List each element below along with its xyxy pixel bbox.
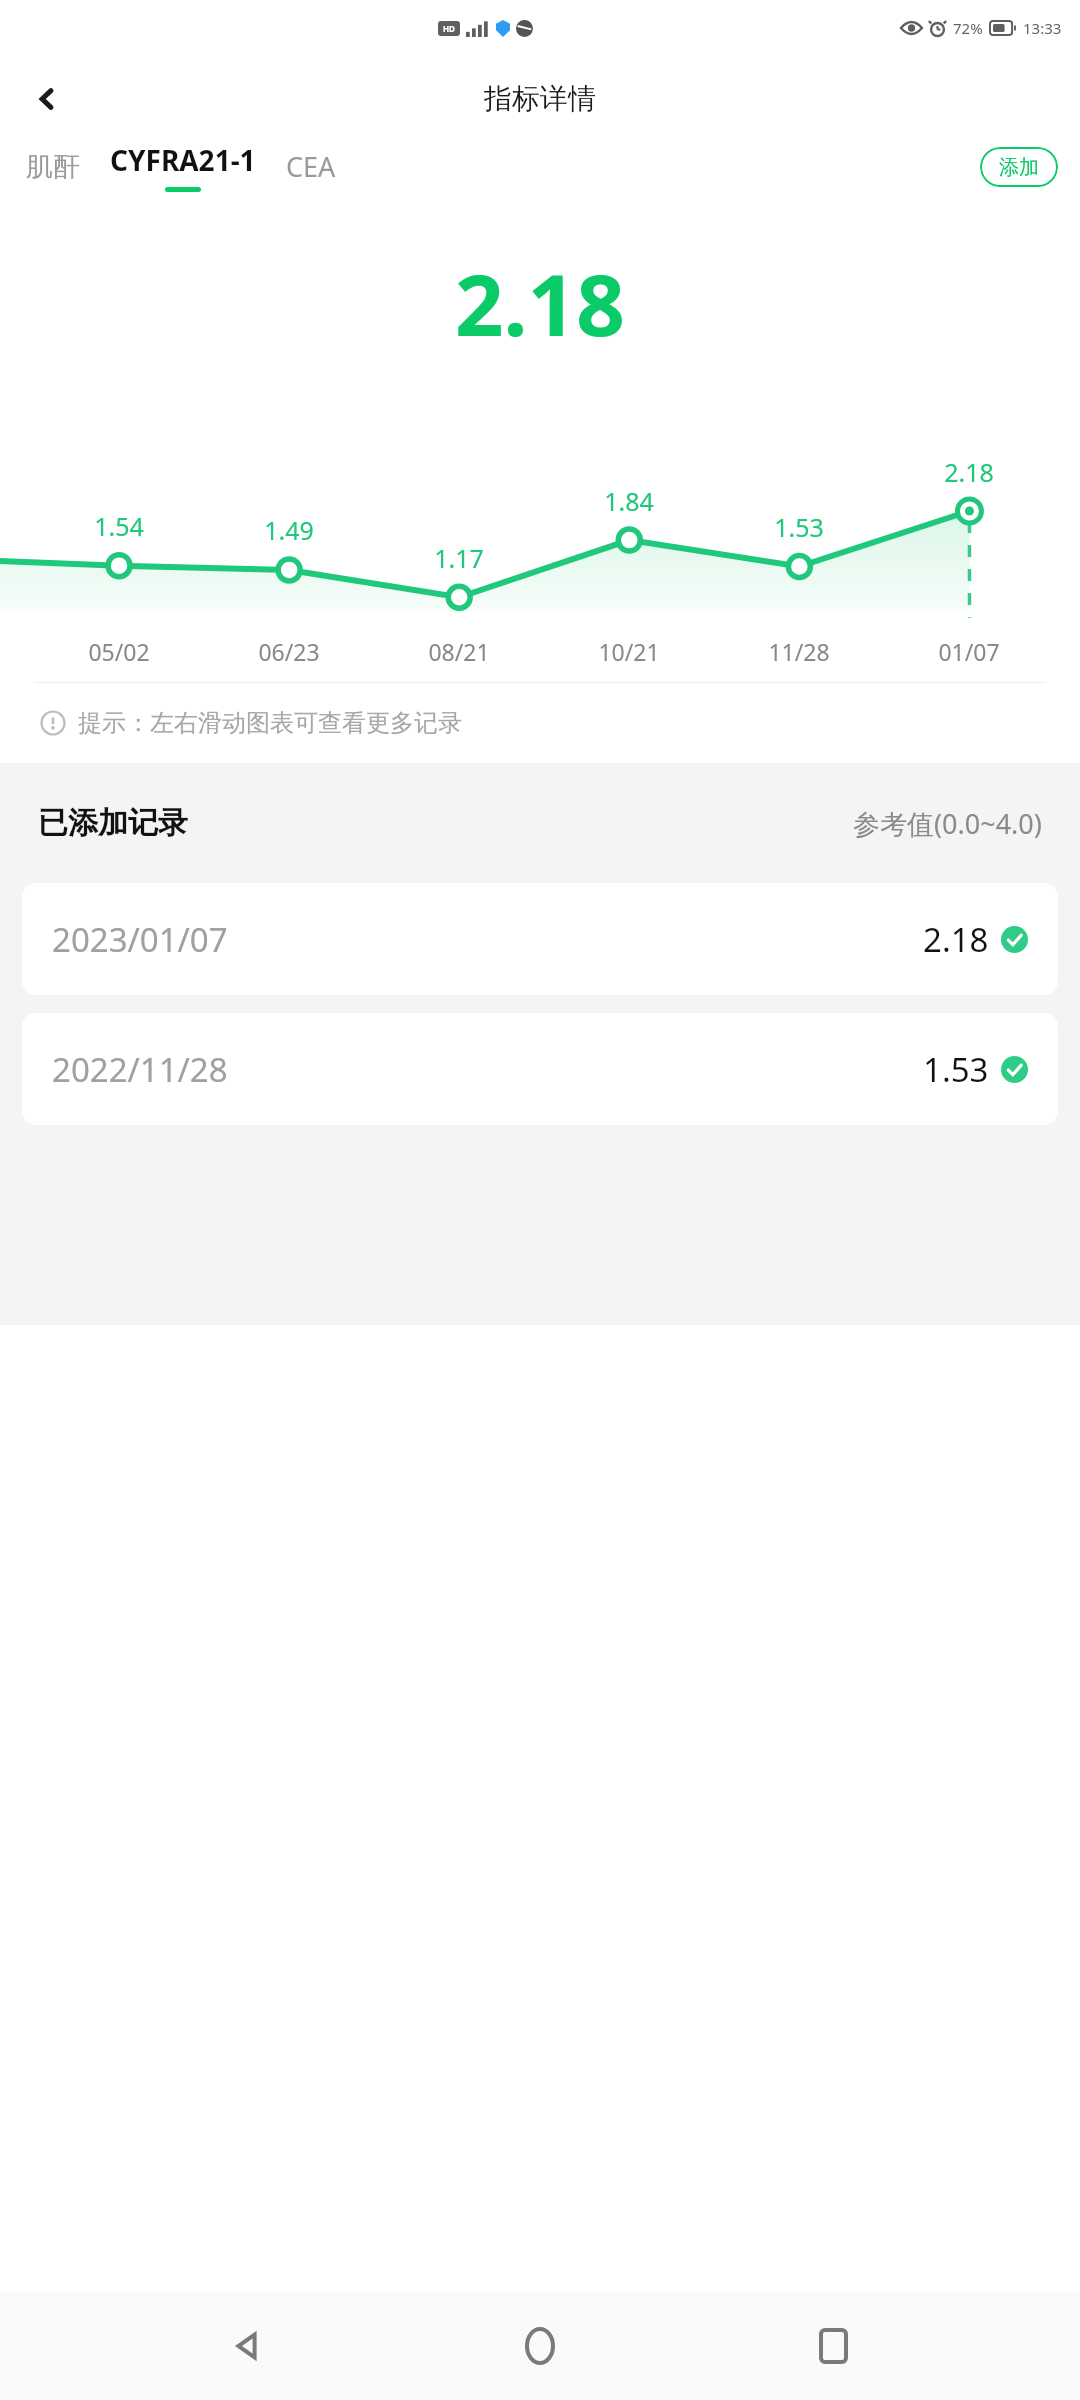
button[interactable]: 主屏幕 [495,2301,585,2391]
button[interactable]: 2023/01/07 [22,883,1058,995]
staticText: 1.17 [434,541,484,575]
staticText: 肌酐 [26,150,80,184]
staticText: 10/21 [598,636,660,667]
staticText: 08/21 [428,636,490,667]
staticText: 2.18 [944,455,994,489]
staticText: 已添加记录 [38,804,188,842]
button[interactable]: 肌酐 [22,144,84,190]
button[interactable]: 返回 [203,2301,293,2391]
staticText: 2.18 [923,917,989,962]
button[interactable]: CEA [282,142,340,191]
staticText: 参考值(0.0~4.0) [853,805,1042,842]
staticText: 11/28 [768,636,830,667]
staticText: 1.54 [94,509,144,543]
staticText: 05/02 [88,636,150,667]
staticText: 2022/11/28 [52,1047,228,1092]
staticText: 13:33 [1023,18,1062,38]
staticText: HD [443,23,455,34]
button[interactable]: 添加 [980,147,1058,187]
button[interactable]: 返回 [18,70,76,128]
staticText: 添加记录 [500,2307,580,2332]
staticText: 指标详情 [484,81,596,116]
button[interactable]: 最近任务 [788,2301,878,2391]
button[interactable]: 添加记录 [56,2297,1024,2342]
staticText: 提示：左右滑动图表可查看更多记录 [78,708,462,738]
staticText: 1.53 [923,1047,989,1092]
staticText: CYFRA21-1 [110,141,256,179]
staticText: 2.18 [455,245,625,361]
staticText: CEA [286,148,336,185]
staticText: 1.49 [264,513,314,547]
staticText: 添加 [999,155,1039,180]
staticText: 01/07 [938,636,1000,667]
staticText: 1.53 [774,510,824,544]
staticText: 1.84 [604,484,654,518]
button[interactable]: CYFRA21-1 [106,141,260,192]
button[interactable]: 2022/11/28 [22,1013,1058,1125]
staticText: 72% [953,18,983,38]
staticText: 06/23 [258,636,320,667]
staticText: 2023/01/07 [52,917,228,962]
